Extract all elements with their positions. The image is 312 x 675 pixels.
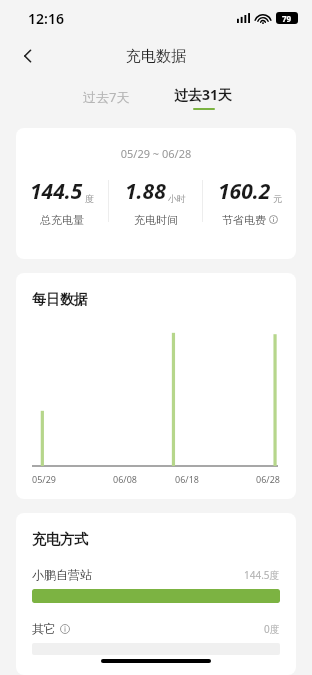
staticText: 06/08 — [94, 473, 156, 485]
staticText: 过去7天 — [83, 88, 130, 106]
staticText: 过去31天 — [174, 85, 233, 104]
staticText: 05/29 ~ 06/28 — [16, 146, 296, 161]
staticText: 小鹏自营站 — [32, 567, 92, 582]
staticText: 144.5度 — [244, 568, 280, 582]
staticText: 总充电量 — [40, 213, 84, 225]
button[interactable]: 过去31天 — [164, 83, 243, 112]
staticText: 05/29 — [32, 473, 94, 485]
staticText: 79 — [282, 13, 292, 24]
staticText: 节省电费 — [222, 213, 266, 225]
button[interactable]: Back — [10, 38, 46, 74]
staticText: 其它 — [32, 621, 56, 636]
staticText: 充电方式 — [32, 531, 88, 549]
button[interactable]: 每日数据 — [16, 273, 296, 499]
staticText: 160.2 — [218, 177, 271, 206]
button[interactable]: 05/29 ~ 06/28 — [16, 128, 296, 259]
staticText: 144.5 — [30, 177, 83, 206]
staticText: 充电数据 — [126, 47, 186, 66]
staticText: 06/18 — [156, 473, 218, 485]
button[interactable]: 其它 — [32, 621, 280, 655]
staticText: 1.88 — [125, 177, 166, 206]
staticText: 度 — [85, 193, 94, 204]
button[interactable]: 小鹏自营站 — [32, 567, 280, 603]
staticText: 06/28 — [218, 473, 280, 485]
button[interactable]: 过去7天 — [69, 82, 144, 112]
staticText: 元 — [273, 193, 282, 204]
staticText: 每日数据 — [32, 291, 88, 309]
staticText: 小时 — [168, 193, 186, 204]
staticText: 0度 — [264, 622, 280, 636]
staticText: 充电时间 — [134, 213, 178, 225]
staticText: 12:16 — [28, 9, 64, 28]
